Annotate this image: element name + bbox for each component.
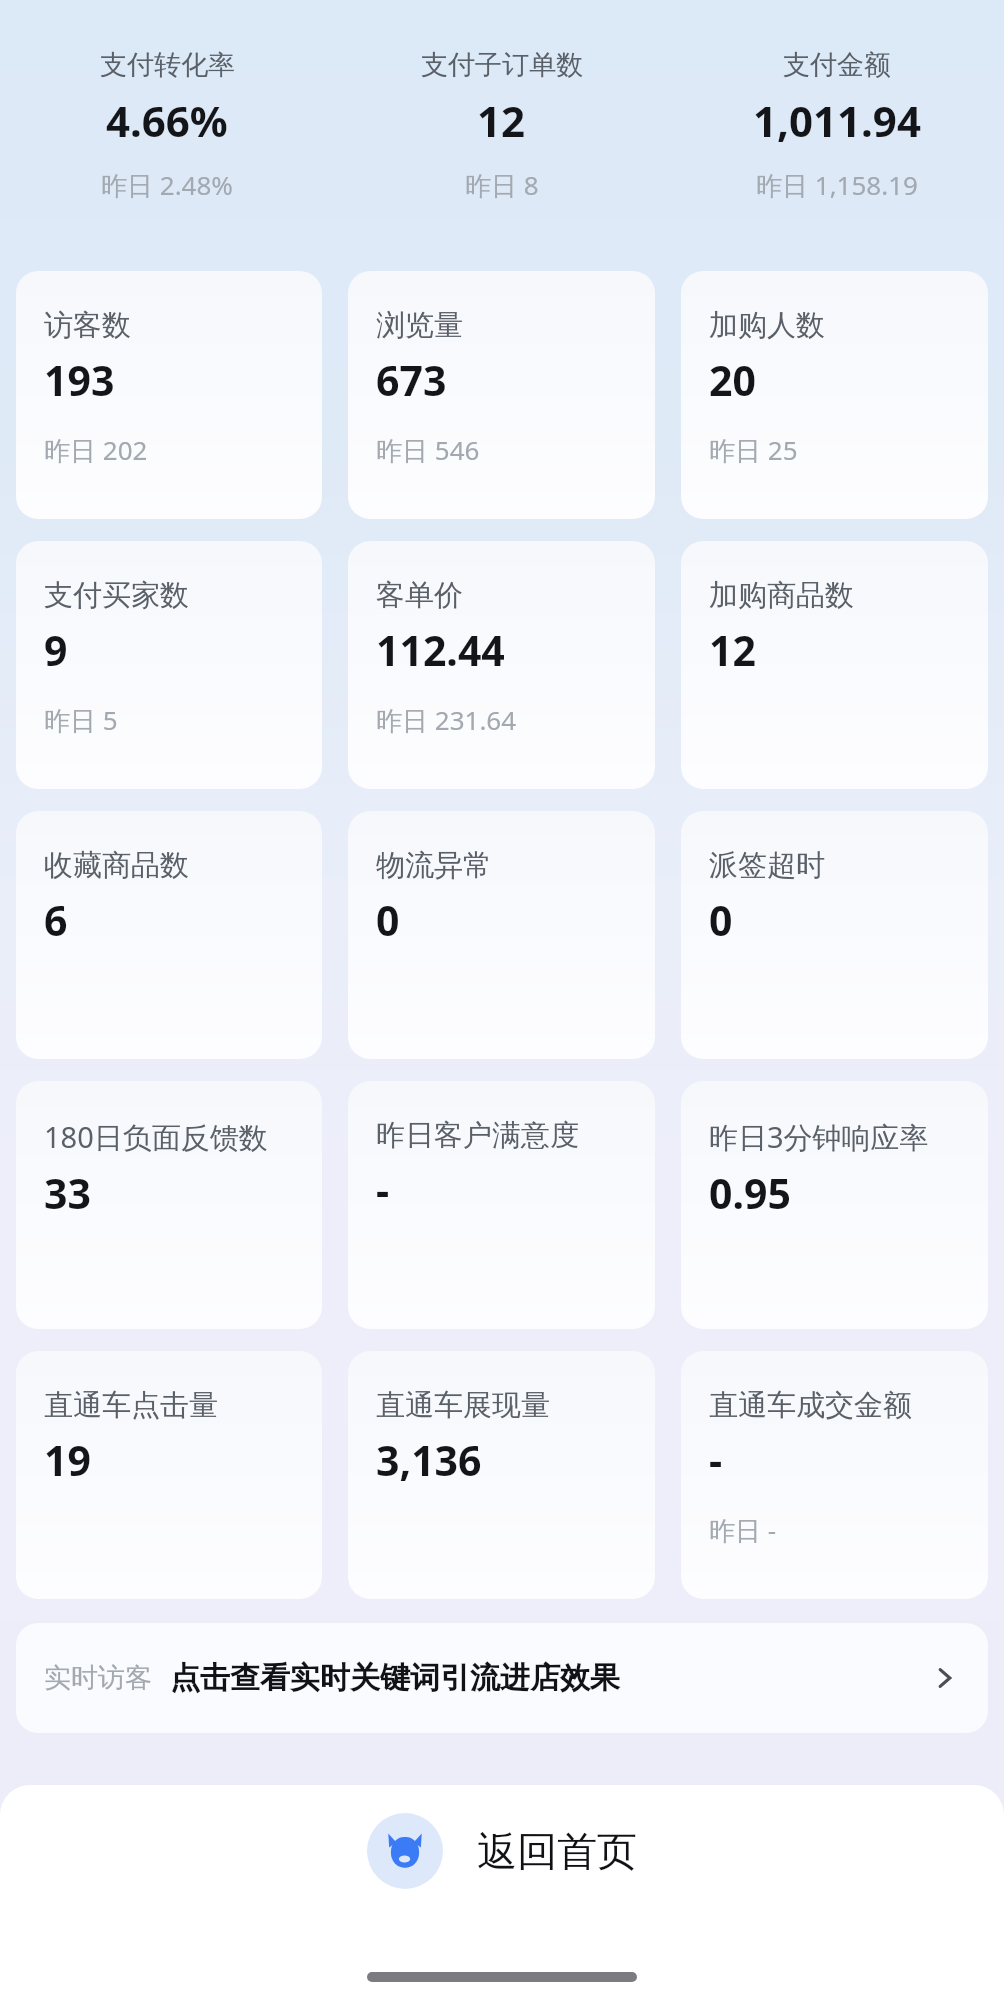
staticText: 昨日 231.64 xyxy=(376,702,517,738)
staticText: 112.44 xyxy=(376,622,505,678)
button[interactable]: 直通车成交金额 xyxy=(681,1351,988,1599)
staticText: 193 xyxy=(44,352,115,408)
button[interactable]: 昨日客户满意度 xyxy=(348,1081,655,1329)
staticText: 访客数 xyxy=(44,307,131,344)
staticText: 0.95 xyxy=(709,1165,791,1221)
staticText: 12 xyxy=(477,92,526,149)
staticText: 0 xyxy=(376,892,400,948)
staticText: 20 xyxy=(709,352,756,408)
staticText: 昨日 202 xyxy=(44,432,148,468)
staticText: 支付子订单数 xyxy=(421,48,583,82)
staticText: 直通车展现量 xyxy=(376,1387,550,1424)
button[interactable]: 返回首页 xyxy=(351,1805,653,1897)
staticText: 支付金额 xyxy=(783,48,891,82)
staticText: 1,011.94 xyxy=(753,92,921,149)
staticText: 客单价 xyxy=(376,577,463,614)
staticText: 支付转化率 xyxy=(100,48,235,82)
button[interactable]: 浏览量 xyxy=(348,271,655,519)
staticText: 点击查看实时关键词引流进店效果 xyxy=(170,1659,620,1697)
staticText: 昨日 5 xyxy=(44,702,118,738)
staticText: 实时访客 xyxy=(44,1661,152,1695)
staticText: 昨日3分钟响应率 xyxy=(709,1117,929,1157)
staticText: 昨日 1,158.19 xyxy=(756,167,918,203)
button[interactable]: 物流异常 xyxy=(348,811,655,1059)
button[interactable]: 客单价 xyxy=(348,541,655,789)
staticText: 昨日 25 xyxy=(709,432,798,468)
staticText: 昨日 - xyxy=(709,1512,777,1548)
button[interactable]: 实时访客 xyxy=(16,1623,988,1733)
staticText: 昨日 546 xyxy=(376,432,480,468)
staticText: 直通车成交金额 xyxy=(709,1387,912,1424)
staticText: 6 xyxy=(44,892,68,948)
staticText: 3,136 xyxy=(376,1432,482,1488)
staticText: 673 xyxy=(376,352,447,408)
staticText: 返回首页 xyxy=(477,1826,637,1876)
button[interactable]: 180日负面反馈数 xyxy=(16,1081,322,1329)
staticText: 180日负面反馈数 xyxy=(44,1117,268,1157)
staticText: - xyxy=(376,1162,390,1218)
staticText: 33 xyxy=(44,1165,91,1221)
staticText: 收藏商品数 xyxy=(44,847,189,884)
staticText: 物流异常 xyxy=(376,847,492,884)
button[interactable]: 昨日3分钟响应率 xyxy=(681,1081,988,1329)
staticText: 昨日 2.48% xyxy=(101,167,233,203)
button[interactable]: 支付买家数 xyxy=(16,541,322,789)
staticText: 昨日 8 xyxy=(465,167,539,203)
staticText: 派签超时 xyxy=(709,847,825,884)
staticText: 0 xyxy=(709,892,733,948)
staticText: 支付买家数 xyxy=(44,577,189,614)
staticText: 12 xyxy=(709,622,756,678)
button[interactable]: 访客数 xyxy=(16,271,322,519)
button[interactable]: 直通车点击量 xyxy=(16,1351,322,1599)
button[interactable]: 加购人数 xyxy=(681,271,988,519)
staticText: 4.66% xyxy=(106,92,228,149)
staticText: 直通车点击量 xyxy=(44,1387,218,1424)
staticText: 加购商品数 xyxy=(709,577,854,614)
staticText: 昨日客户满意度 xyxy=(376,1117,579,1154)
staticText: 加购人数 xyxy=(709,307,825,344)
staticText: - xyxy=(709,1432,723,1488)
button[interactable]: 直通车展现量 xyxy=(348,1351,655,1599)
button[interactable]: 加购商品数 xyxy=(681,541,988,789)
button[interactable]: 收藏商品数 xyxy=(16,811,322,1059)
staticText: 9 xyxy=(44,622,68,678)
button[interactable]: 派签超时 xyxy=(681,811,988,1059)
staticText: 19 xyxy=(44,1432,91,1488)
staticText: 浏览量 xyxy=(376,307,463,344)
